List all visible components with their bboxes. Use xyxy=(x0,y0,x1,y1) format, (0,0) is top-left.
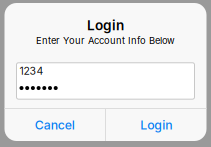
button[interactable]: Cancel xyxy=(4,109,105,141)
staticText: Cancel xyxy=(35,118,75,132)
button[interactable]: Login xyxy=(106,109,206,141)
staticText: Login xyxy=(87,17,124,33)
staticText: 1234 xyxy=(19,64,43,77)
staticText: Enter Your Account Info Below xyxy=(36,35,175,46)
staticText: Login xyxy=(140,118,172,132)
